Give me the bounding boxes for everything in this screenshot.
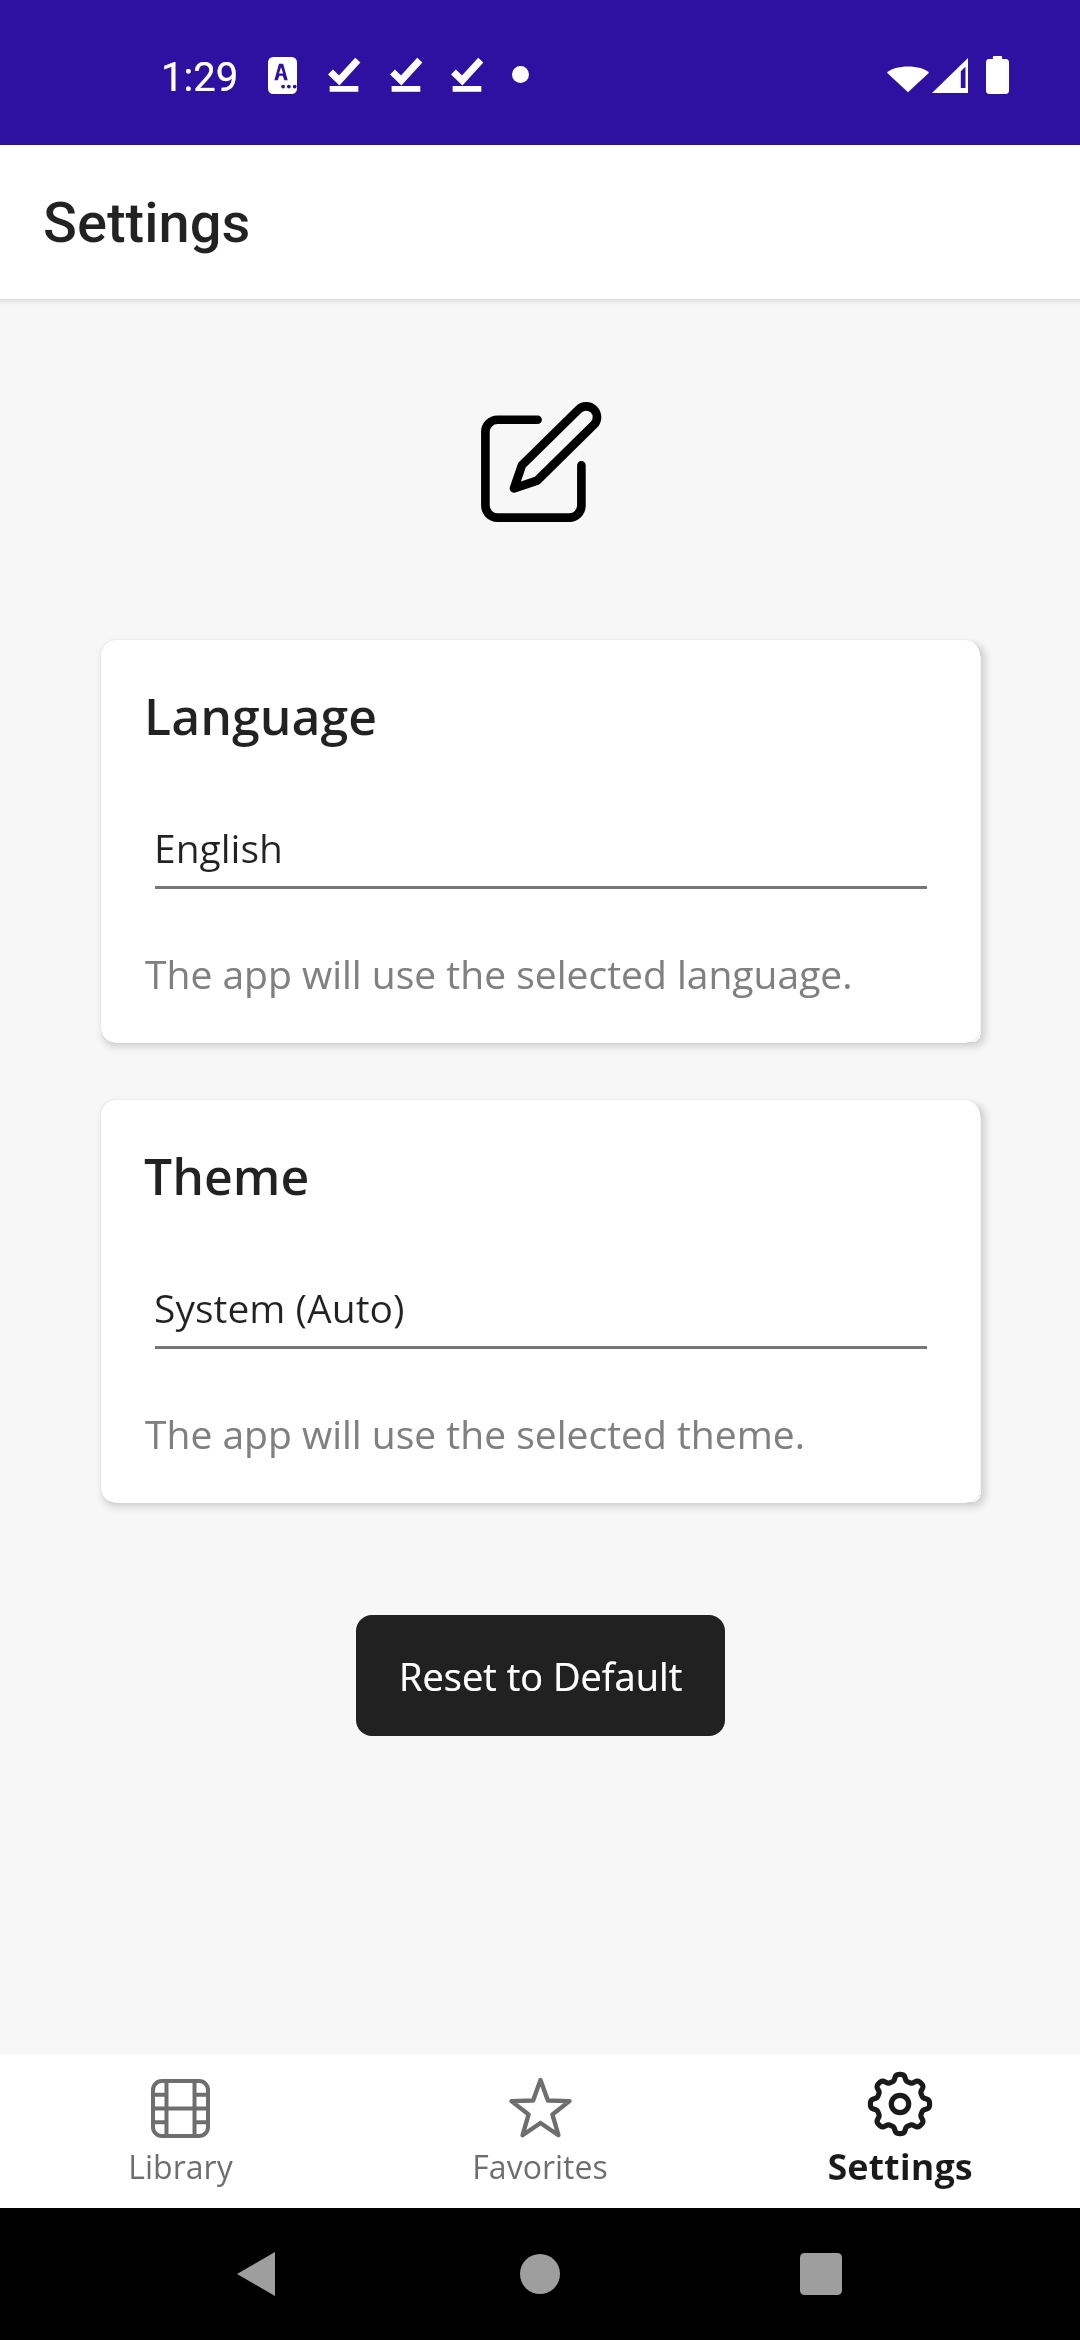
staticText: The app will use the selected theme. [145, 1407, 805, 1460]
staticText: English [154, 821, 283, 874]
button[interactable]: Home [520, 2254, 560, 2294]
staticText: Settings [827, 2142, 973, 2191]
button[interactable]: Recent apps [800, 2253, 842, 2295]
button[interactable]: Library [0, 2054, 360, 2208]
staticText: Library [128, 2145, 233, 2189]
button[interactable]: Language [101, 640, 980, 1043]
staticText: The app will use the selected language. [145, 947, 853, 1000]
button[interactable]: Favorites [360, 2054, 720, 2208]
button[interactable]: Settings [720, 2054, 1080, 2208]
button[interactable]: Theme [101, 1100, 980, 1503]
staticText: System (Auto) [154, 1281, 405, 1334]
staticText: Language [144, 682, 377, 750]
staticText: Theme [144, 1142, 310, 1210]
button[interactable]: Reset to Default [356, 1615, 725, 1736]
staticText: 1:29 [161, 54, 239, 101]
staticText: Reset to Default [399, 1650, 683, 1702]
button[interactable]: Back [237, 2252, 275, 2296]
staticText: Settings [43, 190, 251, 256]
staticText: Favorites [472, 2145, 608, 2189]
